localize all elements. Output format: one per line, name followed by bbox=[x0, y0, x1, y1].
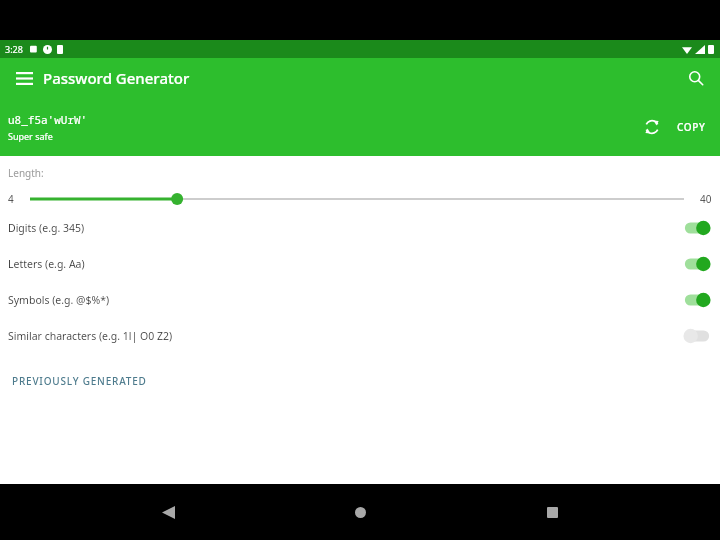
staticText: u8_f5a'wUrW' bbox=[8, 112, 88, 127]
button[interactable]: Symbols (e.g. @$%*) bbox=[0, 282, 720, 318]
button[interactable] bbox=[30, 188, 684, 210]
button[interactable]: Regenerate password bbox=[637, 112, 667, 142]
staticText: Length: bbox=[8, 166, 44, 180]
button[interactable]: Back bbox=[144, 488, 192, 536]
staticText: Symbols (e.g. @$%*) bbox=[8, 293, 682, 307]
staticText: Password Generator bbox=[43, 68, 190, 88]
staticText: Super safe bbox=[8, 130, 53, 142]
button[interactable]: Recent apps bbox=[528, 488, 576, 536]
staticText: COPY bbox=[677, 120, 706, 134]
button[interactable]: Search bbox=[678, 60, 714, 96]
staticText: PREVIOUSLY GENERATED bbox=[12, 374, 147, 388]
staticText: Similar characters (e.g. 1l| O0 Z2) bbox=[8, 329, 682, 343]
button[interactable]: Home bbox=[336, 488, 384, 536]
staticText: 40 bbox=[700, 192, 712, 206]
staticText: Letters (e.g. Aa) bbox=[8, 257, 682, 271]
button[interactable]: Letters (e.g. Aa) bbox=[0, 246, 720, 282]
button[interactable]: Similar characters (e.g. 1l| O0 Z2) bbox=[0, 318, 720, 354]
button[interactable]: PREVIOUSLY GENERATED bbox=[0, 368, 720, 394]
button[interactable]: COPY bbox=[671, 114, 712, 140]
button[interactable]: Open navigation menu bbox=[6, 60, 42, 96]
staticText: 4 bbox=[8, 192, 14, 206]
staticText: 3:28 bbox=[5, 43, 23, 55]
button[interactable]: Digits (e.g. 345) bbox=[0, 210, 720, 246]
staticText: Digits (e.g. 345) bbox=[8, 221, 682, 235]
